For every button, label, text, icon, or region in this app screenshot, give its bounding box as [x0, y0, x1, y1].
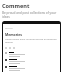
button[interactable]: [5, 52, 58, 57]
staticText: Memories: [5, 32, 22, 37]
staticText: Comment: [2, 2, 30, 10]
staticText: Lorem ipsum dolor sit amet elit sed do e…: [5, 38, 58, 44]
button[interactable]: [5, 66, 58, 71]
staticText: RETRO: [5, 26, 13, 29]
button[interactable]: [5, 59, 58, 64]
staticText: Be proud and post collections of your id…: [2, 11, 62, 19]
